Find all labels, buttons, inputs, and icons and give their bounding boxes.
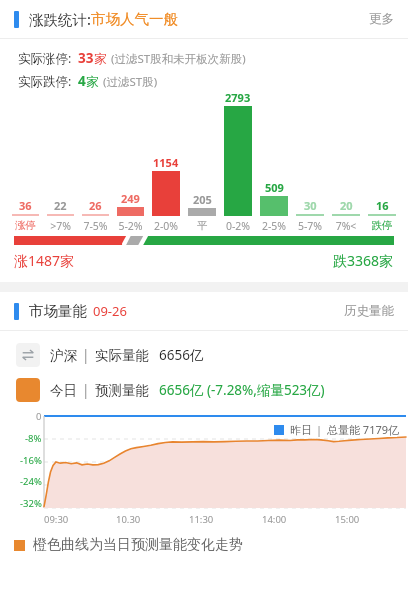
staticText: 实际量能 bbox=[95, 347, 149, 364]
staticText: >7% bbox=[43, 219, 78, 232]
staticText: 涨跌统计: bbox=[29, 9, 91, 29]
staticText: 7-5% bbox=[78, 219, 113, 232]
staticText: 30 bbox=[304, 198, 317, 213]
staticText: 205 bbox=[193, 192, 212, 207]
staticText: 26 bbox=[89, 198, 102, 213]
staticText: 2-0% bbox=[148, 219, 184, 232]
staticText: 市场人气一般 bbox=[91, 10, 178, 28]
staticText: 总量能 7179亿 bbox=[327, 422, 400, 437]
staticText: 11:30 bbox=[189, 513, 214, 526]
staticText: 20 bbox=[340, 198, 353, 213]
other: 沪深 bbox=[16, 343, 40, 367]
staticText: 5-7% bbox=[292, 219, 328, 232]
staticText: 509 bbox=[265, 180, 284, 195]
staticText: 14:00 bbox=[262, 513, 287, 526]
staticText: 16 bbox=[376, 198, 389, 213]
staticText: 6656亿 bbox=[159, 346, 204, 364]
staticText: 市场量能 bbox=[29, 302, 87, 320]
staticText: 家 bbox=[94, 51, 107, 67]
staticText: 09-26 bbox=[93, 302, 127, 320]
staticText: 36 bbox=[19, 198, 32, 213]
staticText: 15:00 bbox=[335, 513, 360, 526]
staticText: | bbox=[82, 381, 90, 399]
staticText: 今日 bbox=[50, 382, 77, 399]
staticText: 10.30 bbox=[116, 513, 141, 526]
staticText: 0-2% bbox=[220, 219, 256, 232]
staticText: -32% bbox=[20, 497, 42, 508]
staticText: 跌3368家 bbox=[333, 251, 394, 270]
button[interactable]: 更多 bbox=[355, 11, 408, 27]
button[interactable]: 沪深 bbox=[16, 343, 408, 367]
staticText: 昨日 bbox=[290, 423, 312, 437]
staticText: 更多 bbox=[369, 11, 394, 27]
staticText: 2793 bbox=[225, 90, 251, 105]
staticText: 2-5% bbox=[256, 219, 292, 232]
staticText: 实际跌停: bbox=[18, 73, 72, 90]
staticText: 实际涨停: bbox=[18, 50, 72, 67]
button[interactable]: 今日 bbox=[16, 378, 408, 402]
staticText: 沪深 bbox=[50, 347, 77, 364]
staticText: 7%< bbox=[328, 219, 364, 232]
staticText: 0 bbox=[36, 410, 42, 421]
button[interactable]: 市场量能 bbox=[0, 292, 408, 330]
staticText: | bbox=[316, 422, 323, 437]
staticText: (过滤ST股和未开板次新股) bbox=[111, 51, 246, 67]
staticText: -16% bbox=[20, 454, 42, 465]
staticText: 5-2% bbox=[113, 219, 148, 232]
button[interactable]: 历史量能 bbox=[330, 303, 408, 319]
staticText: (过滤ST股) bbox=[103, 74, 158, 90]
staticText: 6656亿 (-7.28%,缩量523亿) bbox=[159, 381, 325, 399]
staticText: 22 bbox=[54, 198, 67, 213]
staticText: 4 bbox=[78, 72, 86, 90]
staticText: 历史量能 bbox=[344, 303, 394, 319]
staticText: | bbox=[82, 346, 90, 364]
staticText: 家 bbox=[86, 74, 99, 90]
button[interactable]: 涨跌统计: bbox=[0, 0, 408, 38]
staticText: 平 bbox=[184, 219, 220, 232]
staticText: -8% bbox=[25, 432, 42, 443]
staticText: -24% bbox=[20, 475, 42, 486]
staticText: 跌停 bbox=[364, 219, 400, 232]
staticText: 橙色曲线为当日预测量能变化走势 bbox=[33, 536, 243, 554]
staticText: 预测量能 bbox=[95, 382, 149, 399]
button[interactable] bbox=[14, 236, 394, 245]
staticText: 涨停 bbox=[8, 219, 43, 232]
staticText: 1154 bbox=[153, 155, 179, 170]
staticText: 33 bbox=[78, 49, 94, 67]
staticText: 09:30 bbox=[44, 513, 69, 526]
staticText: 249 bbox=[121, 191, 140, 206]
staticText: 涨1487家 bbox=[14, 251, 75, 270]
